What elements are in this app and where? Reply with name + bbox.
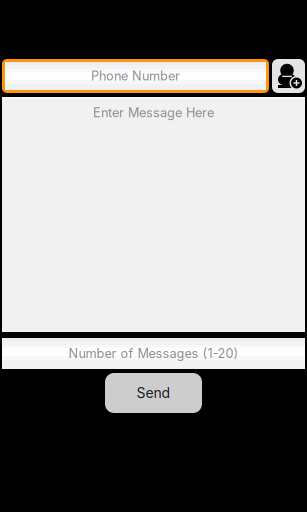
button[interactable]: Add contact: [272, 59, 305, 93]
staticText: Enter Message Here: [93, 105, 214, 120]
staticText: Send: [136, 384, 170, 401]
staticText: Number of Messages (1-20): [68, 346, 238, 361]
button[interactable]: Phone Number: [2, 59, 269, 93]
button[interactable]: Enter Message Here: [2, 97, 305, 332]
staticText: Phone Number: [91, 68, 180, 84]
button[interactable]: Number of Messages (1-20): [2, 338, 305, 369]
button[interactable]: Send: [105, 373, 202, 413]
